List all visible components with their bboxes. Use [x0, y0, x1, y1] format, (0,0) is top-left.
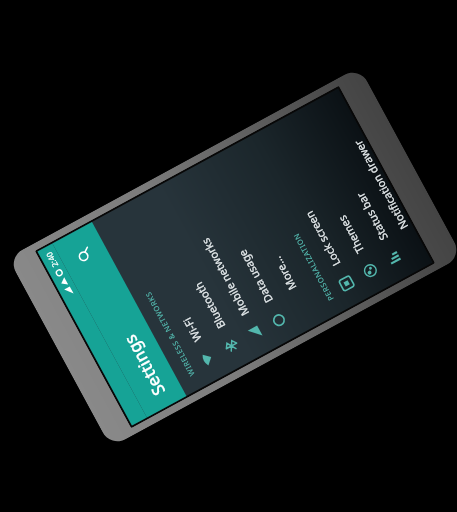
staticText: Notification drawer — [350, 137, 411, 232]
staticText: Data usage — [234, 247, 276, 306]
staticText: Bluetooth — [190, 279, 228, 331]
button[interactable]: More… — [207, 147, 325, 333]
staticText: PERSONALIZATION — [291, 231, 336, 303]
staticText: Mobile networks — [197, 235, 252, 319]
staticText: Wi-Fi — [179, 314, 205, 344]
staticText: Status bar — [352, 189, 391, 243]
button[interactable]: Data usage — [183, 159, 302, 346]
button[interactable]: Lock screen — [251, 123, 369, 310]
staticText: WIRELESS & NETWORKS — [143, 290, 197, 378]
staticText: Settings — [118, 330, 170, 400]
button[interactable]: Bluetooth — [136, 185, 254, 372]
staticText: More… — [269, 254, 300, 293]
button[interactable]: Search — [63, 233, 106, 276]
button[interactable]: Notification drawer — [322, 88, 432, 271]
staticText: 2:40 — [43, 250, 60, 269]
button[interactable]: Themes — [275, 110, 393, 297]
staticText: Lock screen — [301, 208, 343, 269]
button[interactable]: Mobile networks — [160, 172, 278, 359]
button[interactable]: Status bar — [298, 97, 417, 284]
button[interactable]: Wi-Fi — [112, 198, 230, 385]
staticText: Themes — [334, 213, 367, 256]
